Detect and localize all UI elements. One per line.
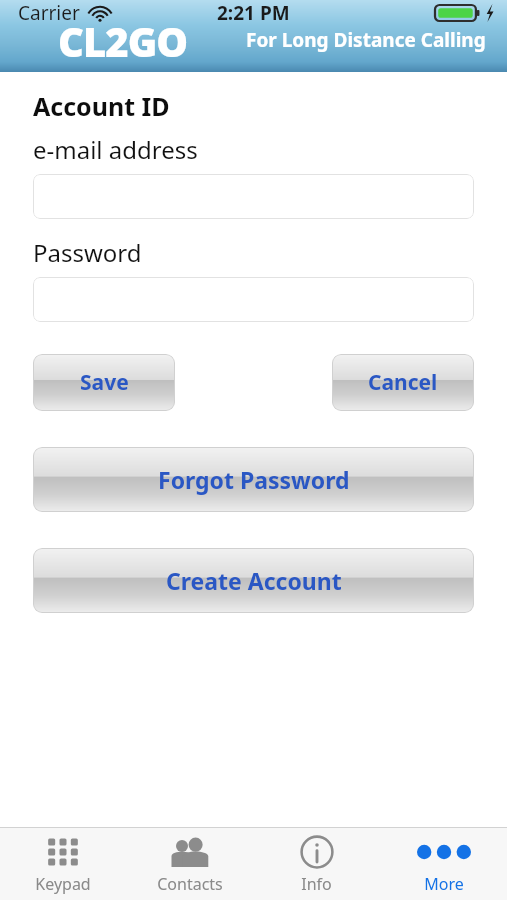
staticText: Carrier	[18, 0, 80, 26]
button[interactable]: Info	[253, 827, 380, 900]
staticText: Save	[80, 368, 129, 397]
staticText: Password	[33, 236, 142, 269]
button[interactable]: Contacts	[126, 827, 253, 900]
button[interactable]	[33, 277, 474, 322]
staticText: Cancel	[368, 368, 438, 397]
staticText: Create Account	[166, 565, 342, 596]
staticText: Contacts	[157, 873, 223, 895]
button[interactable]: Save	[33, 354, 175, 411]
button[interactable]: Cancel	[332, 354, 474, 411]
staticText: Info	[301, 873, 332, 895]
button[interactable]: Forgot Password	[33, 447, 474, 512]
button[interactable]	[33, 174, 474, 219]
staticText: Forgot Password	[158, 464, 350, 495]
staticText: More	[424, 873, 464, 895]
staticText: For Long Distance Calling	[246, 27, 486, 53]
staticText: Keypad	[35, 873, 91, 895]
staticText: 2:21 PM	[217, 0, 290, 26]
button[interactable]: Keypad	[0, 827, 126, 900]
button[interactable]: More	[380, 827, 507, 900]
staticText: CL2GO	[58, 14, 188, 68]
staticText: Account ID	[33, 89, 170, 123]
staticText: e-mail address	[33, 133, 198, 166]
button[interactable]: Create Account	[33, 548, 474, 613]
